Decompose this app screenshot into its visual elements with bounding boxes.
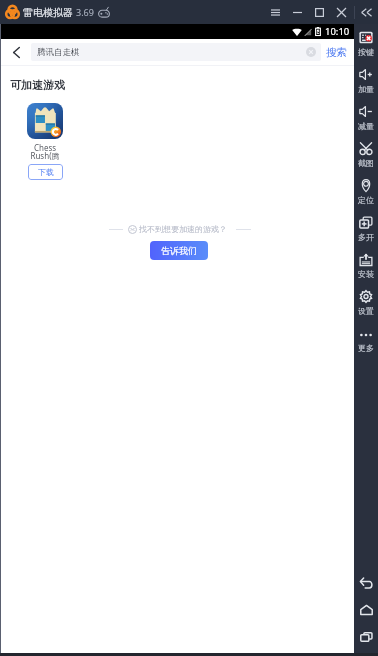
staticText: 按键 [358,47,374,57]
staticText: 3.69 [76,6,94,18]
button[interactable]: Back [1,39,31,65]
button[interactable]: Minimize [286,0,308,24]
button[interactable]: 加量 [354,68,378,105]
button[interactable]: Collapse sidebar [355,0,378,24]
other: Gamepad [98,7,110,18]
staticText: 下载 [38,167,54,177]
button[interactable]: Back [355,576,377,590]
button[interactable]: 安装 [354,253,378,290]
button[interactable]: Close [330,0,352,24]
button[interactable]: 搜索 [321,39,354,65]
button[interactable]: Clear search [303,44,319,60]
button[interactable]: Recent apps [355,630,377,644]
button[interactable]: Maximize [308,0,330,24]
staticText: 10:10 [325,25,350,38]
staticText: 找不到想要加速的游戏？ [139,224,227,234]
button[interactable]: 下载 [28,164,63,180]
staticText: 截图 [358,158,374,168]
button[interactable]: 腾讯自走棋 [31,43,321,61]
button[interactable]: 截图 [354,142,378,179]
button[interactable]: 更多 [354,327,378,364]
staticText: 减量 [358,121,374,131]
staticText: 设置 [358,306,374,316]
staticText: 搜索 [326,46,347,59]
staticText: 可加速游戏 [10,78,65,92]
button[interactable]: 定位 [354,179,378,216]
staticText: 更多 [358,343,374,353]
button[interactable]: Home [355,603,377,617]
button[interactable]: 按键 [354,31,378,68]
staticText: 加量 [358,84,374,94]
staticText: 安装 [358,269,374,279]
button[interactable]: 设置 [354,290,378,327]
staticText: 告诉我们 [161,245,197,256]
button[interactable]: Menu [264,0,286,24]
button[interactable]: Chess Rush game icon [27,103,63,139]
button[interactable]: 告诉我们 [150,241,208,260]
staticText: 雷电模拟器 [23,6,73,19]
staticText: 定位 [358,195,374,205]
staticText: Chess Rush(腾讯) [26,142,64,161]
button[interactable]: 多开 [354,216,378,253]
staticText: 腾讯自走棋 [37,47,80,58]
button[interactable]: 减量 [354,105,378,142]
staticText: 多开 [358,232,374,242]
